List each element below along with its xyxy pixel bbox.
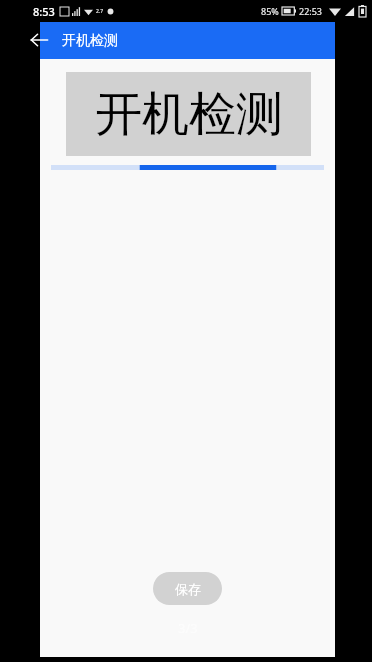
staticText: 22:53 [299, 5, 323, 17]
button[interactable]: Back [27, 28, 51, 52]
button[interactable]: 保存 [153, 572, 222, 605]
staticText: 8:53 [33, 4, 55, 19]
staticText: 85% [261, 5, 279, 17]
staticText: 保存 [175, 581, 201, 597]
staticText: 开机检测 [62, 32, 118, 50]
staticText: 2.7 [96, 8, 104, 15]
staticText: 开机检测 [95, 85, 283, 144]
